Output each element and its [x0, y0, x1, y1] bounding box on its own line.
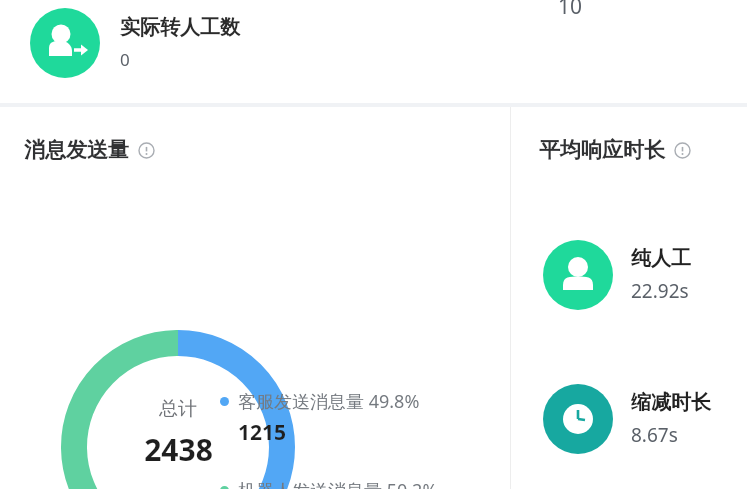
staticText: 机器人发送消息量 50.2% [238, 478, 438, 489]
staticText: 8.67s [631, 422, 678, 448]
staticText: 客服发送消息量 49.8% [238, 389, 420, 414]
other: 缩减时长 [543, 384, 613, 454]
staticText: 0 [120, 48, 130, 71]
staticText: 消息发送量 [24, 137, 129, 163]
other: 纯人工 [543, 240, 613, 310]
staticText: 缩减时长 [631, 390, 711, 415]
button[interactable]: 客服发送消息量 49.8% [220, 389, 500, 447]
button[interactable]: 缩减时长 [543, 384, 711, 454]
staticText: 2438 [144, 429, 213, 470]
button[interactable]: 平均响应时长 [539, 137, 691, 163]
staticText: 1215 [238, 418, 287, 447]
button[interactable]: 转人工 [30, 8, 240, 78]
staticText: 总计 [159, 397, 197, 421]
button[interactable]: 消息发送量 [24, 137, 155, 163]
staticText: 实际转人工数 [120, 15, 240, 40]
button[interactable]: 机器人发送消息量 50.2% [220, 478, 500, 489]
staticText: 22.92s [631, 278, 689, 304]
button[interactable]: 纯人工 [543, 240, 691, 310]
staticText: 纯人工 [631, 246, 691, 271]
other: 转人工 [30, 8, 100, 78]
staticText: 10 [558, 0, 583, 21]
staticText: 平均响应时长 [539, 137, 665, 163]
